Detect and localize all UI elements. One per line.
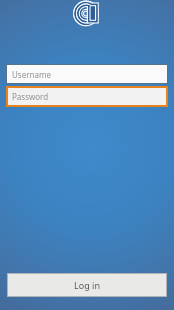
button[interactable]: Username [6, 64, 168, 84]
staticText: Username [12, 69, 51, 80]
staticText: Log in [74, 279, 100, 291]
other: App logo [74, 1, 100, 27]
button[interactable]: Password [6, 86, 168, 107]
button[interactable]: Log in [7, 273, 167, 297]
staticText: Password [12, 91, 49, 102]
